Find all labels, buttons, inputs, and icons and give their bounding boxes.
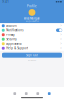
staticText: >	[60, 33, 62, 36]
button[interactable]: Appearance	[0, 41, 64, 46]
button[interactable]: Account	[0, 23, 64, 28]
staticText: 9:41	[2, 0, 9, 3]
staticText: >	[60, 46, 62, 50]
button[interactable]: Security	[0, 37, 64, 41]
staticText: Account	[6, 24, 17, 27]
button[interactable]: Help & Support	[0, 46, 64, 50]
staticText: Security	[6, 37, 16, 41]
staticText: Profile	[27, 4, 37, 8]
button[interactable]: Notifications	[0, 28, 64, 32]
button[interactable]: Profile	[43, 87, 55, 97]
staticText: alex@example.com	[25, 20, 38, 22]
staticText: Sign Out	[26, 53, 38, 57]
staticText: Notifications	[6, 28, 23, 32]
staticText: Version 2.4.1	[27, 59, 36, 61]
button[interactable]: Sign Out	[2, 53, 62, 58]
staticText: Privacy	[6, 33, 14, 36]
staticText: Help & Support	[6, 46, 28, 50]
staticText: Appearance	[6, 42, 22, 45]
staticText: >	[60, 37, 62, 41]
staticText: >	[60, 24, 62, 27]
button[interactable]: Search	[20, 87, 32, 97]
staticText: >	[60, 42, 62, 45]
button[interactable]: Home	[9, 87, 20, 97]
button[interactable]: Saved	[32, 87, 43, 97]
button[interactable]: Privacy	[0, 32, 64, 37]
staticText: Alex Morgan	[24, 17, 40, 20]
